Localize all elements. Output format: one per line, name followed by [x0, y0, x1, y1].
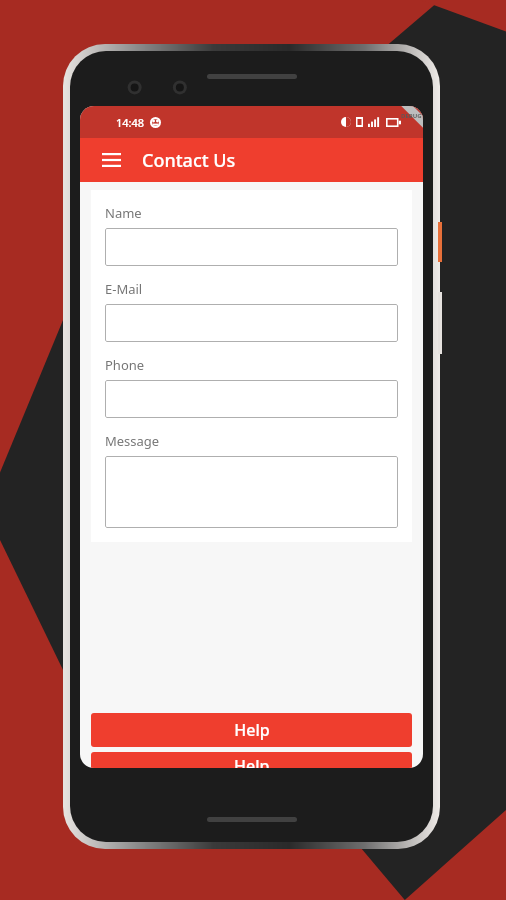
button[interactable]: Help [91, 713, 412, 747]
button[interactable]: Open navigation menu [92, 141, 130, 179]
button[interactable]: E-Mail input field [105, 304, 398, 342]
staticText: Name [105, 204, 142, 222]
button[interactable]: Name input field [105, 228, 398, 266]
button[interactable]: Phone input field [105, 380, 398, 418]
staticText: Phone [105, 356, 145, 374]
staticText: DEBUG [401, 112, 422, 120]
staticText: E-Mail [105, 280, 143, 298]
staticText: Contact Us [142, 148, 236, 173]
staticText: 14:48 [116, 115, 145, 130]
staticText: Help [234, 755, 270, 768]
button[interactable]: Help [91, 752, 412, 768]
staticText: Help [234, 719, 270, 741]
staticText: Message [105, 432, 160, 450]
button[interactable]: Message input field [105, 456, 398, 528]
